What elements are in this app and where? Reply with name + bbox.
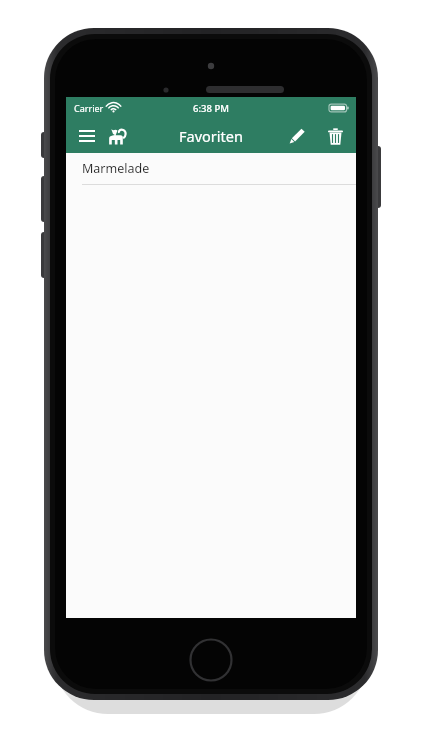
staticText: 6:38 PM — [193, 102, 229, 115]
button[interactable]: Delete — [320, 121, 350, 151]
button[interactable]: Edit — [282, 121, 312, 151]
staticText: Carrier — [74, 102, 104, 114]
other: Home — [189, 638, 233, 682]
button[interactable]: Pets — [102, 121, 132, 151]
staticText: Favoriten — [179, 126, 243, 146]
staticText: Marmelade — [82, 160, 150, 177]
button[interactable]: Menu — [72, 121, 102, 151]
button[interactable]: Marmelade — [66, 153, 356, 184]
